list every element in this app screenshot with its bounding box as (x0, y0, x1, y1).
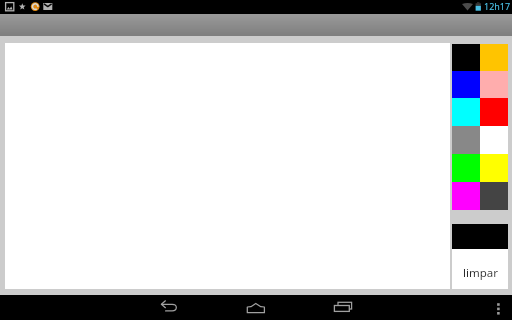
button[interactable]: Home (239, 295, 273, 320)
staticText: 12h17 (484, 0, 511, 12)
button[interactable]: limpar (452, 249, 508, 289)
staticText: limpar (463, 265, 498, 281)
button[interactable]: More options (490, 295, 508, 320)
button[interactable]: Recent apps (327, 295, 361, 320)
button[interactable]: Back (152, 295, 186, 320)
